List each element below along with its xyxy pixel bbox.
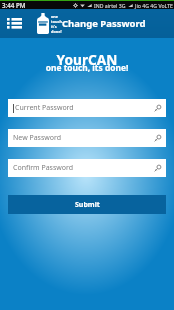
staticText: done! (51, 29, 62, 34)
other: Show password (153, 134, 162, 143)
staticText: Change Password (62, 17, 146, 30)
staticText: touch. (51, 19, 63, 24)
other: Show password (153, 164, 162, 173)
button[interactable]: New Password (8, 129, 166, 147)
staticText: New Password (13, 133, 62, 143)
button[interactable]: Open navigation menu (2, 9, 26, 38)
staticText: one touch, its done! (0, 62, 174, 73)
staticText: one (51, 14, 59, 19)
staticText: Current Password (15, 103, 74, 113)
button[interactable]: Current Password (8, 99, 166, 117)
staticText: YourCAN (0, 50, 174, 69)
other: Show password (153, 104, 162, 113)
staticText: 3:44 PM (2, 1, 26, 9)
button[interactable]: Submit (8, 195, 166, 214)
button[interactable]: Confirm Password (8, 159, 166, 177)
staticText: Jio 4G 4G VoLTE (135, 2, 173, 9)
staticText: it's (51, 24, 57, 29)
staticText: IND airtel 3G (94, 2, 126, 9)
staticText: Submit (75, 200, 100, 210)
staticText: Confirm Password (13, 163, 74, 173)
